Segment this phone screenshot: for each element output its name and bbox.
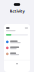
button[interactable] xyxy=(4,45,30,51)
button[interactable]: More xyxy=(4,60,30,67)
staticText: Activity xyxy=(9,8,24,14)
button[interactable] xyxy=(4,51,30,57)
button[interactable] xyxy=(4,39,30,45)
